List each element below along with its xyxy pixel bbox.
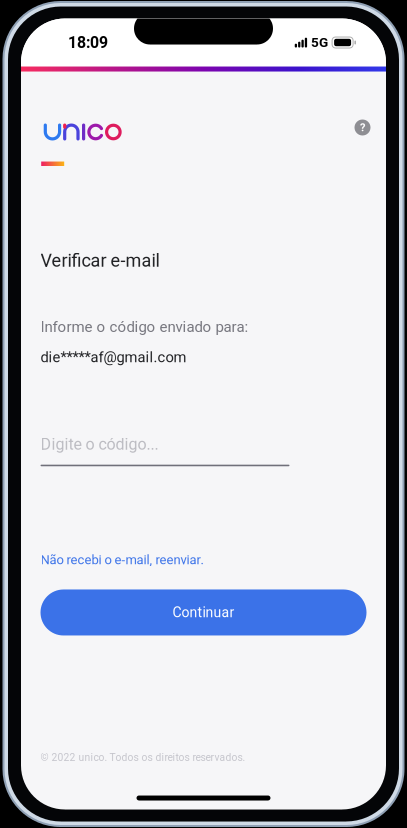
staticText: die*****af@gmail.com xyxy=(40,349,186,366)
button[interactable]: Não recebi o e-mail, reenviar. xyxy=(40,552,203,567)
staticText: Não recebi o e-mail, reenviar. xyxy=(40,552,203,567)
staticText: Verificar e-mail xyxy=(40,250,159,271)
staticText: 5G xyxy=(311,35,328,50)
staticText: © 2022 unico. Todos os direitos reservad… xyxy=(40,751,245,763)
staticText: Digite o código... xyxy=(40,435,158,454)
button[interactable]: Continuar xyxy=(40,589,366,635)
staticText: 18:09 xyxy=(68,33,108,52)
staticText: Continuar xyxy=(172,604,234,621)
staticText: ? xyxy=(360,121,365,134)
staticText: Informe o código enviado para: xyxy=(40,318,248,336)
button[interactable]: Ajuda xyxy=(344,109,380,145)
